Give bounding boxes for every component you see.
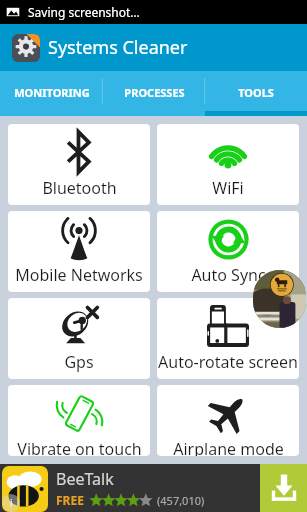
button[interactable]: BeeTalk icon [2,466,48,512]
button[interactable]: Airplane mode [157,385,299,456]
staticText: Vibrate on touch [17,438,142,456]
staticText: Systems Cleaner [48,35,188,60]
button[interactable]: Auto-rotate screen [157,298,299,379]
staticText: TOOLS [238,85,274,100]
button[interactable]: App icon [12,34,40,62]
staticText: Auto Sync [191,264,266,286]
staticText: Airplane mode [173,438,284,456]
staticText: FREE [56,492,84,508]
staticText: MONITORING [14,85,90,100]
staticText: Saving screenshot… [28,4,140,20]
button[interactable]: TOOLS [205,71,307,116]
button[interactable]: WiFi [157,124,299,205]
staticText: Mobile Networks [15,264,143,286]
button[interactable]: Download [260,464,307,512]
button[interactable]: PROCESSES [103,71,205,116]
button[interactable]: Gps [8,298,150,379]
staticText: (457,010) [157,493,205,508]
staticText: i [10,496,13,510]
button[interactable]: Vibrate on touch [8,385,150,456]
staticText: Auto-rotate screen [158,351,298,373]
staticText: PROCESSES [124,85,185,100]
button[interactable]: Bluetooth [8,124,150,205]
staticText: Gps [64,351,94,373]
staticText: Bluetooth [42,177,117,199]
staticText: WiFi [212,177,244,199]
button[interactable]: Chat bubble [253,270,306,328]
staticText: BeeTalk [56,468,114,490]
button[interactable]: Mobile Networks [8,211,150,292]
button[interactable]: MONITORING [0,71,103,116]
button[interactable]: Auto Sync [157,211,299,292]
